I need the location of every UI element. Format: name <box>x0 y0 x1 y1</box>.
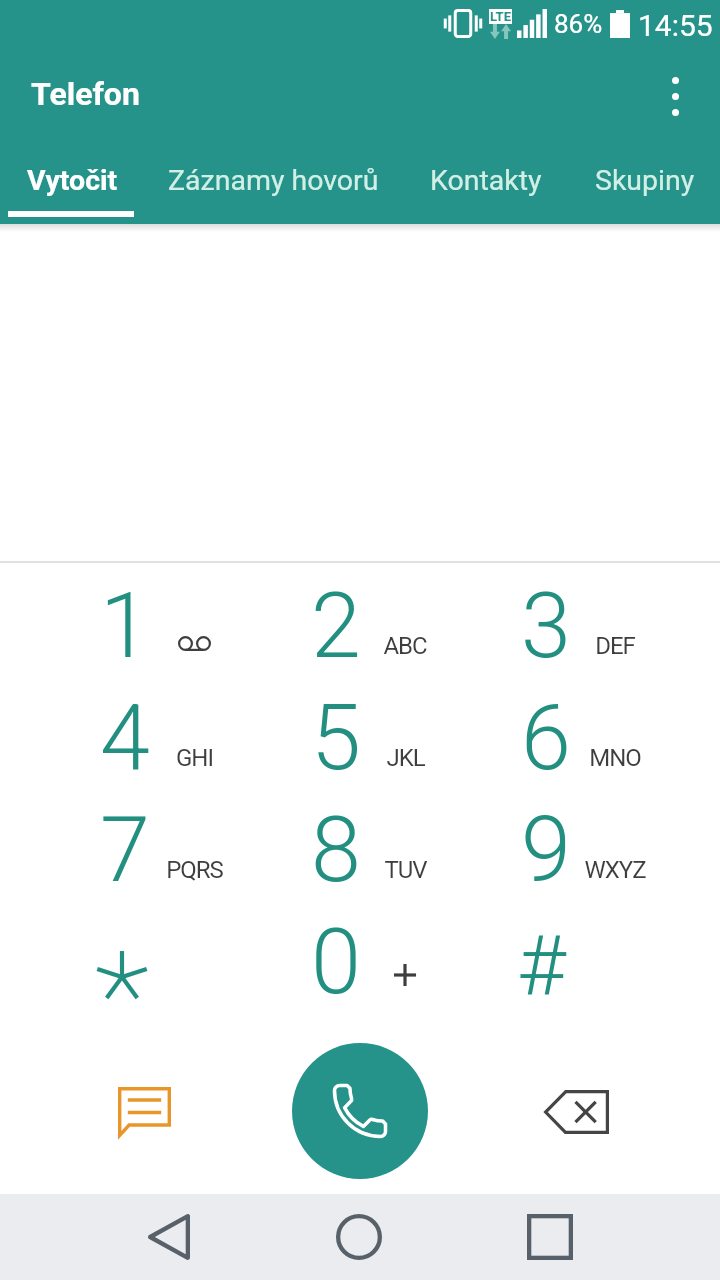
staticText: 3 <box>521 574 571 679</box>
button[interactable]: Send message <box>76 1044 212 1180</box>
staticText: 6 <box>521 686 571 791</box>
button[interactable]: Key 4 <box>20 692 230 804</box>
staticText: DEF <box>595 632 635 660</box>
button[interactable]: Key 2 <box>231 580 441 692</box>
button[interactable]: Key 8 <box>231 804 441 916</box>
button[interactable]: Backspace <box>508 1044 644 1180</box>
button[interactable]: Call <box>292 1043 428 1179</box>
button[interactable]: Back <box>109 1194 229 1280</box>
staticText: Skupiny <box>595 164 695 197</box>
staticText: 1 <box>100 574 150 679</box>
staticText: PQRS <box>166 856 223 884</box>
button[interactable]: Home <box>299 1194 419 1280</box>
staticText: GHI <box>176 744 213 772</box>
staticText: 14:55 <box>638 8 713 40</box>
staticText: Kontakty <box>430 164 542 197</box>
button[interactable]: Key * <box>20 916 230 1028</box>
staticText: Telefon <box>31 75 140 113</box>
button[interactable]: Key 6 <box>441 692 651 804</box>
button[interactable]: Vytočit <box>0 148 144 212</box>
staticText: 2 <box>311 574 361 679</box>
staticText: 9 <box>521 798 571 903</box>
staticText: 86% <box>554 9 603 39</box>
button[interactable]: More options <box>652 67 698 125</box>
staticText: WXYZ <box>584 856 646 884</box>
staticText: 4 <box>100 686 150 791</box>
staticText: ABC <box>383 632 427 660</box>
staticText: 7 <box>100 798 150 903</box>
button[interactable]: Key 5 <box>231 692 441 804</box>
button[interactable]: Recents <box>490 1194 610 1280</box>
button[interactable]: Key 0 <box>231 916 441 1028</box>
staticText: LTE <box>490 9 511 24</box>
button[interactable]: Záznamy hovorů <box>144 148 403 212</box>
staticText: 0 <box>311 910 361 1015</box>
staticText: # <box>517 917 566 1015</box>
staticText: 8 <box>311 798 361 903</box>
staticText: TUV <box>384 856 427 884</box>
staticText: 5 <box>311 686 361 791</box>
staticText: MNO <box>589 744 641 772</box>
button[interactable]: Kontakty <box>403 148 569 212</box>
button[interactable]: Key # <box>441 916 651 1028</box>
button[interactable]: Key 3 <box>441 580 651 692</box>
button[interactable]: Skupiny <box>569 148 720 212</box>
button[interactable]: Key 7 <box>20 804 230 916</box>
button[interactable]: Key 1 <box>20 580 230 692</box>
staticText: Záznamy hovorů <box>168 164 379 197</box>
staticText: JKL <box>386 744 425 772</box>
staticText: Vytočit <box>27 164 118 197</box>
button[interactable]: Key 9 <box>441 804 651 916</box>
